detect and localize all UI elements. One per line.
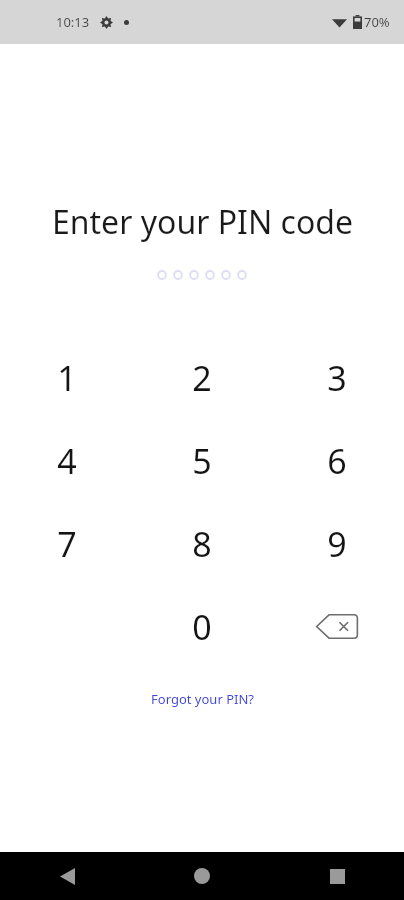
button[interactable]: 7 — [0, 502, 134, 585]
staticText: 6 — [327, 438, 347, 484]
staticText: 3 — [327, 355, 347, 401]
staticText: Forgot your PIN? — [151, 690, 254, 708]
button[interactable]: 3 — [269, 336, 404, 419]
button[interactable]: Backspace — [269, 585, 404, 668]
button[interactable]: 8 — [134, 502, 269, 585]
button[interactable]: Back — [0, 852, 134, 900]
button[interactable]: 6 — [269, 419, 404, 502]
staticText: 70% — [364, 13, 390, 31]
button[interactable]: 1 — [0, 336, 134, 419]
button[interactable]: Recent apps — [270, 852, 404, 900]
staticText: 2 — [192, 355, 212, 401]
staticText: 8 — [192, 521, 212, 567]
button[interactable]: 2 — [134, 336, 269, 419]
button[interactable]: 4 — [0, 419, 134, 502]
button[interactable]: 0 — [134, 585, 269, 668]
staticText: Enter your PIN code — [52, 200, 353, 244]
staticText: 0 — [192, 604, 212, 650]
staticText: 9 — [327, 521, 347, 567]
staticText: 10:13 — [56, 13, 90, 31]
button[interactable]: 5 — [134, 419, 269, 502]
staticText: 4 — [57, 438, 77, 484]
button[interactable]: 9 — [269, 502, 404, 585]
staticText: 5 — [192, 438, 212, 484]
button[interactable]: Forgot your PIN? — [151, 690, 254, 708]
staticText: 7 — [57, 521, 77, 567]
button[interactable]: Home — [135, 852, 269, 900]
staticText: 1 — [57, 355, 77, 401]
